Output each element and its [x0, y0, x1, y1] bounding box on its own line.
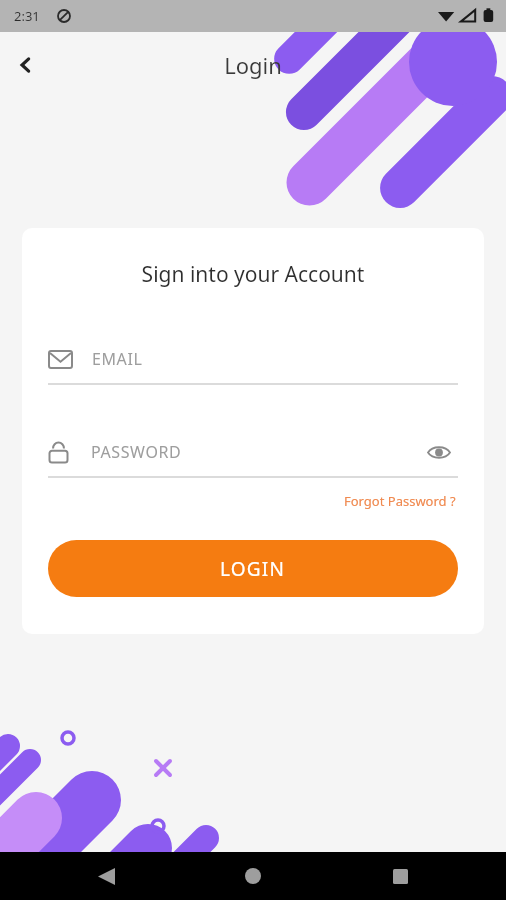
button[interactable]: Back [86, 856, 126, 896]
button[interactable]: Forgot Password ? [342, 490, 458, 512]
staticText: LOGIN [220, 556, 286, 582]
button[interactable]: PASSWORD [48, 426, 458, 478]
button[interactable]: LOGIN [48, 540, 458, 597]
button[interactable]: Recent apps [380, 856, 420, 896]
button[interactable]: EMAIL [48, 333, 458, 385]
button[interactable]: Show password [420, 433, 458, 471]
staticText: EMAIL [92, 348, 143, 370]
staticText: Login [224, 50, 282, 80]
button[interactable]: Home [233, 856, 273, 896]
staticText: Sign into your Account [22, 260, 484, 289]
staticText: PASSWORD [91, 441, 182, 463]
button[interactable]: Back [4, 43, 48, 87]
staticText: 2:31 [14, 7, 40, 25]
staticText: Forgot Password ? [344, 492, 456, 510]
